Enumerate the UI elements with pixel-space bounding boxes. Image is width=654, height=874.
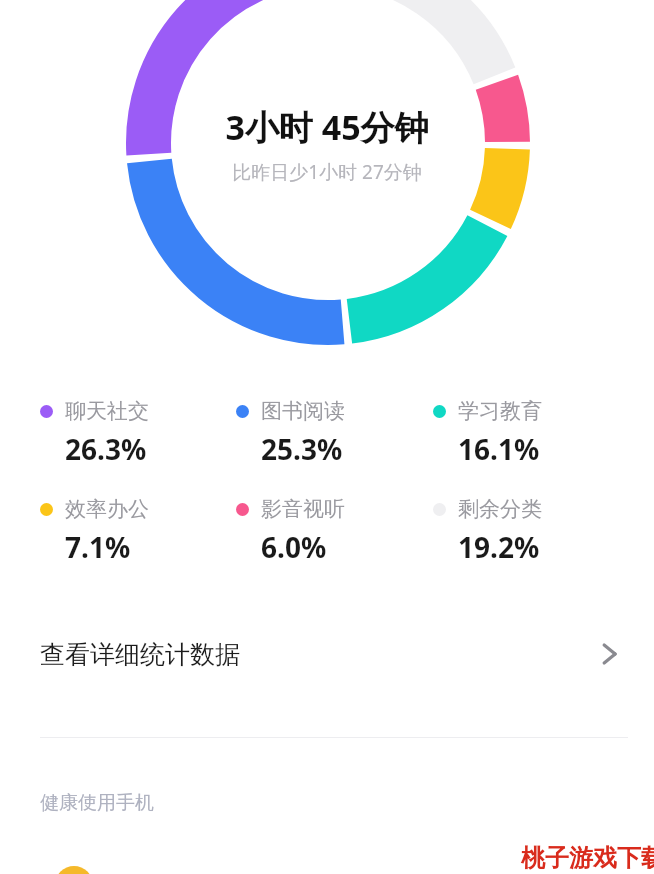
staticText: 效率办公 — [65, 496, 149, 522]
staticText: 影音视听 — [261, 496, 345, 522]
staticText: 3小时 45分钟 — [225, 104, 429, 150]
button[interactable]: 效率办公 — [40, 496, 236, 566]
button[interactable]: 查看详细统计数据 — [0, 613, 654, 695]
staticText: 6.0% — [261, 528, 327, 566]
button[interactable]: 聊天社交 — [40, 398, 236, 468]
staticText: 查看详细统计数据 — [40, 639, 240, 670]
button[interactable]: 图书阅读 — [236, 398, 433, 468]
staticText: 聊天社交 — [65, 398, 149, 424]
staticText: 25.3% — [261, 430, 343, 468]
button[interactable]: 影音视听 — [236, 496, 433, 566]
staticText: 19.2% — [458, 528, 540, 566]
staticText: 16.1% — [458, 430, 540, 468]
staticText: 学习教育 — [458, 398, 542, 424]
staticText: 健康使用手机 — [40, 791, 154, 815]
staticText: 剩余分类 — [458, 496, 542, 522]
button[interactable]: 学习教育 — [433, 398, 630, 468]
staticText: 26.3% — [65, 430, 147, 468]
staticText: 比昨日少1小时 27分钟 — [232, 159, 422, 185]
button[interactable]: 剩余分类 — [433, 496, 630, 566]
staticText: 图书阅读 — [261, 398, 345, 424]
staticText: 桃子游戏下载 — [521, 843, 654, 873]
staticText: 7.1% — [65, 528, 131, 566]
